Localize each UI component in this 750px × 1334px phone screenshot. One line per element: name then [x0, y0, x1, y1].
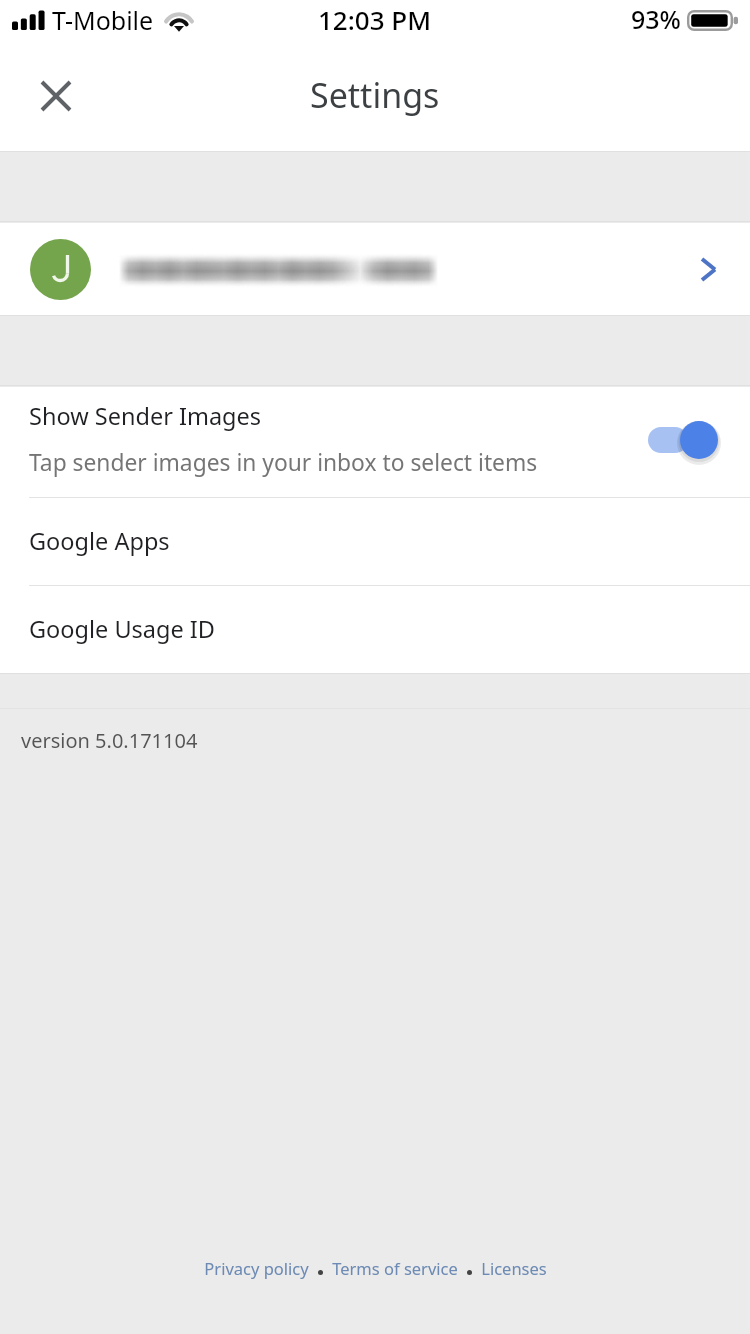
- button[interactable]: Privacy policy: [204, 1251, 309, 1285]
- button[interactable]: Open account: [681, 242, 735, 296]
- staticText: Settings: [310, 72, 440, 118]
- button[interactable]: Show Sender Images: [0, 387, 750, 497]
- button[interactable]: Terms of service: [332, 1251, 458, 1285]
- staticText: version 5.0.171104: [21, 727, 198, 754]
- staticText: 93%: [631, 2, 681, 36]
- staticText: Google Usage ID: [29, 613, 215, 645]
- button[interactable]: Google Apps: [0, 498, 750, 585]
- button[interactable]: Close: [21, 61, 91, 131]
- staticText: Licenses: [481, 1257, 547, 1279]
- staticText: T-Mobile: [52, 3, 154, 37]
- staticText: Google Apps: [29, 525, 170, 557]
- button[interactable]: Show sender images toggle: [648, 417, 724, 463]
- button[interactable]: Open account: [0, 223, 750, 315]
- staticText: Tap sender images in your inbox to selec…: [29, 447, 538, 478]
- staticText: Show Sender Images: [29, 400, 262, 432]
- button[interactable]: Licenses: [481, 1251, 547, 1285]
- staticText: Privacy policy: [204, 1257, 309, 1279]
- staticText: 12:03 PM: [318, 2, 432, 37]
- staticText: Terms of service: [332, 1257, 458, 1279]
- button[interactable]: Google Usage ID: [0, 586, 750, 673]
